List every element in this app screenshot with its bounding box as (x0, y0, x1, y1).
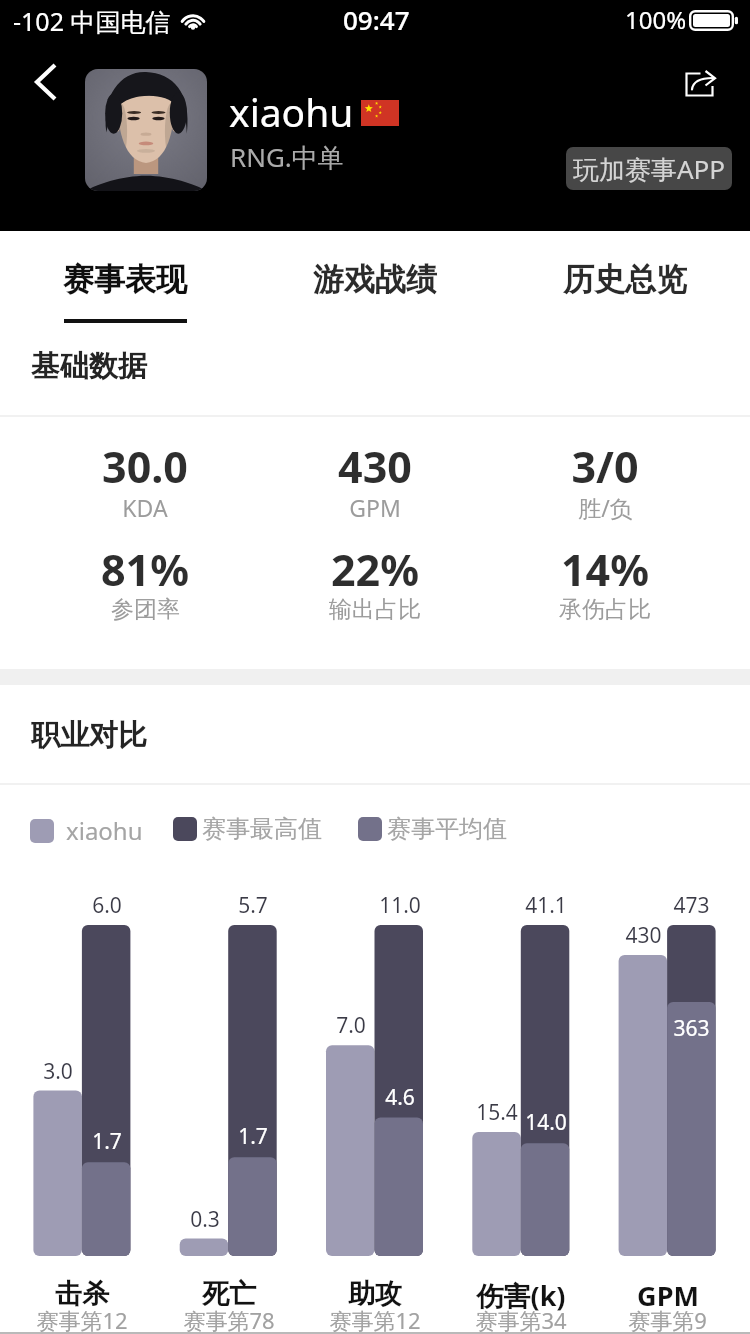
button[interactable] (260, 437, 490, 529)
staticText: GPM (637, 1277, 699, 1314)
button[interactable] (260, 540, 490, 632)
button[interactable] (490, 437, 720, 529)
staticText: 30.0 (102, 437, 188, 496)
staticText: 363 (673, 1014, 710, 1043)
staticText: 赛事最高值 (202, 814, 322, 844)
staticText: 4.6 (385, 1083, 415, 1112)
button[interactable] (326, 925, 423, 1332)
staticText: 473 (673, 891, 710, 920)
staticText: 22% (331, 540, 419, 599)
staticText: xiaohu (229, 85, 354, 138)
staticText: 09:47 (343, 2, 410, 37)
button[interactable]: 赛事表现 (0, 231, 250, 331)
staticText: 赛事表现 (63, 260, 187, 299)
staticText: 81% (101, 540, 189, 599)
button[interactable]: Back (27, 55, 83, 111)
button[interactable] (472, 925, 569, 1332)
staticText: 赛事第12 (36, 1305, 128, 1334)
button[interactable] (30, 437, 260, 529)
staticText: 历史总览 (563, 260, 687, 299)
staticText: 100% (625, 3, 687, 36)
staticText: 赛事第9 (628, 1305, 707, 1334)
button[interactable]: 游戏战绩 (250, 231, 500, 331)
staticText: 1.7 (238, 1122, 268, 1151)
button[interactable]: 历史总览 (500, 231, 750, 331)
staticText: 11.0 (379, 891, 421, 920)
button[interactable] (490, 540, 720, 632)
button[interactable]: xiaohu (30, 814, 143, 847)
staticText: -102 中国电信 (13, 4, 171, 38)
staticText: RNG.中单 (230, 139, 344, 175)
staticText: 0.3 (190, 1205, 220, 1234)
staticText: 6.0 (92, 891, 122, 920)
staticText: 3.0 (43, 1057, 73, 1086)
staticText: 胜/负 (578, 492, 633, 523)
staticText: 41.1 (525, 891, 567, 920)
staticText: 击杀 (55, 1277, 109, 1311)
button[interactable]: 赛事平均值 (358, 814, 507, 844)
staticText: 7.0 (336, 1011, 366, 1040)
button[interactable] (33, 925, 130, 1332)
staticText: 1.7 (92, 1127, 122, 1156)
staticText: 助攻 (348, 1277, 402, 1311)
staticText: 5.7 (238, 891, 268, 920)
staticText: 职业对比 (31, 717, 147, 754)
staticText: 伤害(k) (476, 1277, 566, 1314)
staticText: 赛事第78 (183, 1305, 275, 1334)
staticText: 输出占比 (329, 595, 421, 624)
button[interactable]: Share (673, 60, 729, 116)
staticText: 游戏战绩 (313, 260, 437, 299)
staticText: 死亡 (202, 1277, 256, 1311)
button[interactable]: 赛事最高值 (173, 814, 322, 844)
staticText: 15.4 (476, 1098, 518, 1127)
button[interactable]: Player avatar (85, 69, 207, 191)
button[interactable] (619, 925, 716, 1332)
staticText: 参团率 (111, 595, 180, 624)
button[interactable] (180, 925, 277, 1332)
button[interactable]: 玩加赛事APP (566, 147, 732, 190)
staticText: 基础数据 (31, 348, 147, 385)
staticText: 承伤占比 (559, 595, 651, 624)
staticText: xiaohu (66, 814, 143, 847)
staticText: 赛事第34 (475, 1305, 567, 1334)
staticText: 赛事第12 (329, 1305, 421, 1334)
staticText: KDA (122, 492, 168, 523)
staticText: 14.0 (525, 1108, 567, 1137)
staticText: 430 (625, 921, 662, 950)
staticText: GPM (349, 492, 401, 523)
staticText: 14% (561, 540, 649, 599)
staticText: 430 (338, 437, 412, 496)
staticText: 玩加赛事APP (573, 151, 726, 187)
staticText: 赛事平均值 (387, 814, 507, 844)
button[interactable] (30, 540, 260, 632)
staticText: 3/0 (571, 437, 639, 496)
